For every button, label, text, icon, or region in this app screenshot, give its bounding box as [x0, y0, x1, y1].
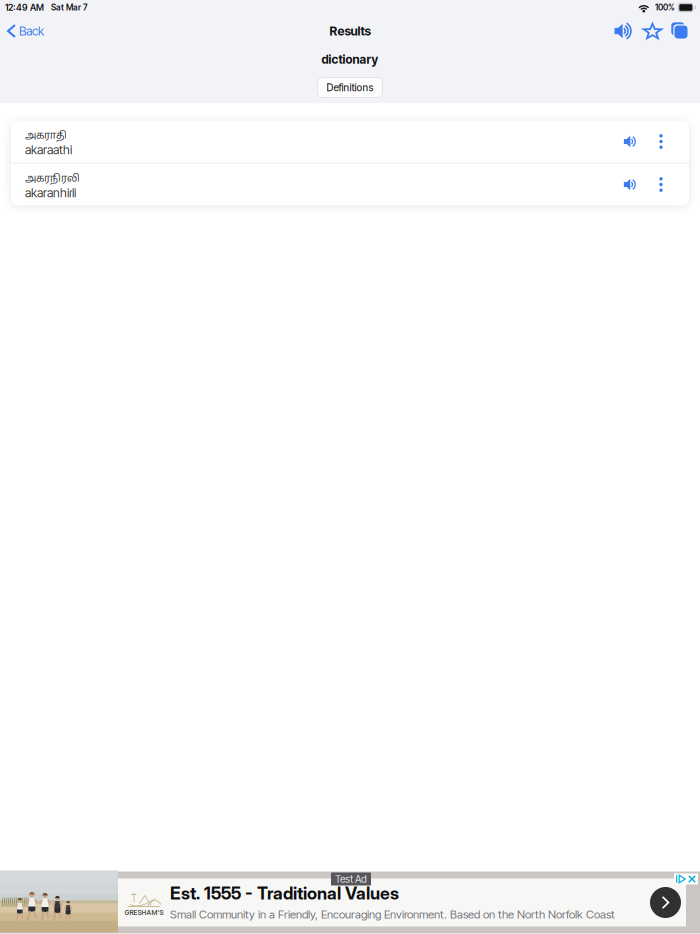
staticText: akaranhiɾli: [25, 185, 76, 200]
button[interactable]: More options for akaraathi: [647, 120, 675, 162]
staticText: அகரநிரலி: [25, 173, 80, 185]
staticText: GRESHAM'S: [124, 908, 163, 917]
staticText: Test Ad: [335, 873, 367, 885]
button[interactable]: Back: [0, 18, 52, 44]
button[interactable]: Add to favorites: [641, 18, 664, 44]
button[interactable]: More options for akaranhiɾli: [647, 163, 675, 205]
staticText: அகராதி: [25, 130, 67, 142]
button[interactable]: Pronounce akaraathi: [615, 120, 647, 162]
staticText: 12:49 AM: [5, 2, 44, 13]
button[interactable]: Pronounce akaranhiɾli: [615, 163, 647, 205]
staticText: akaraathi: [25, 142, 72, 157]
staticText: 100%: [655, 2, 675, 12]
button[interactable]: Definitions: [317, 77, 382, 97]
button[interactable]: அகரநிரலி: [11, 163, 689, 205]
staticText: dictionary: [321, 52, 378, 66]
button[interactable]: Pronounce: [611, 18, 636, 44]
staticText: Back: [19, 23, 44, 38]
staticText: Est. 1555 - Traditional Values: [170, 883, 399, 904]
staticText: Results: [329, 24, 370, 38]
button[interactable]: Open advertisement: [645, 879, 686, 926]
staticText: Definitions: [326, 81, 373, 94]
button[interactable]: Copy: [669, 18, 691, 44]
staticText: Small Community in a Friendly, Encouragi…: [170, 908, 615, 921]
button[interactable]: அகராதி: [11, 120, 689, 162]
staticText: Sat Mar 7: [51, 2, 88, 13]
